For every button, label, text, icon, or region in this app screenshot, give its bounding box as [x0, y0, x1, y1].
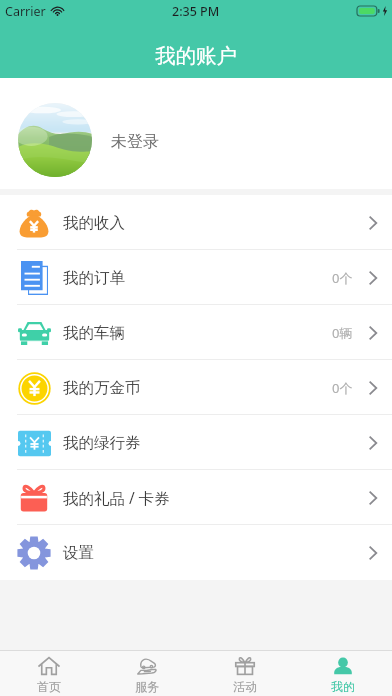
staticText: 设置 [63, 543, 94, 563]
staticText: 0辆 [332, 324, 353, 342]
staticText: 未登录 [111, 132, 159, 152]
staticText: 0个 [332, 379, 353, 397]
staticText: 我的 [331, 679, 355, 694]
button[interactable]: 设置 [0, 525, 392, 580]
button[interactable]: Profile [294, 653, 392, 694]
button[interactable]: 我的万金币 [0, 360, 392, 415]
staticText: 我的礼品 / 卡券 [63, 487, 170, 508]
button[interactable]: 我的绿行券 [0, 415, 392, 470]
staticText: 我的账户 [155, 43, 237, 69]
staticText: 活动 [233, 679, 257, 694]
button[interactable]: 我的礼品 / 卡券 [0, 470, 392, 525]
staticText: 首页 [37, 679, 61, 694]
staticText: 0个 [332, 269, 353, 287]
staticText: 我的绿行券 [63, 433, 141, 453]
button[interactable]: 我的收入 [0, 195, 392, 250]
button[interactable]: 我的订单 [0, 250, 392, 305]
staticText: 我的收入 [63, 213, 125, 233]
staticText: 我的订单 [63, 268, 125, 288]
button[interactable]: Profile photo [18, 103, 92, 177]
button[interactable]: Activities [196, 653, 294, 694]
staticText: 服务 [135, 679, 159, 694]
button[interactable]: Home [0, 653, 98, 694]
staticText: 我的车辆 [63, 323, 125, 343]
staticText: Carrier [5, 3, 46, 20]
staticText: 2:35 PM [172, 3, 220, 20]
button[interactable]: 我的车辆 [0, 305, 392, 360]
button[interactable]: Services [98, 653, 196, 694]
staticText: 我的万金币 [63, 378, 141, 398]
